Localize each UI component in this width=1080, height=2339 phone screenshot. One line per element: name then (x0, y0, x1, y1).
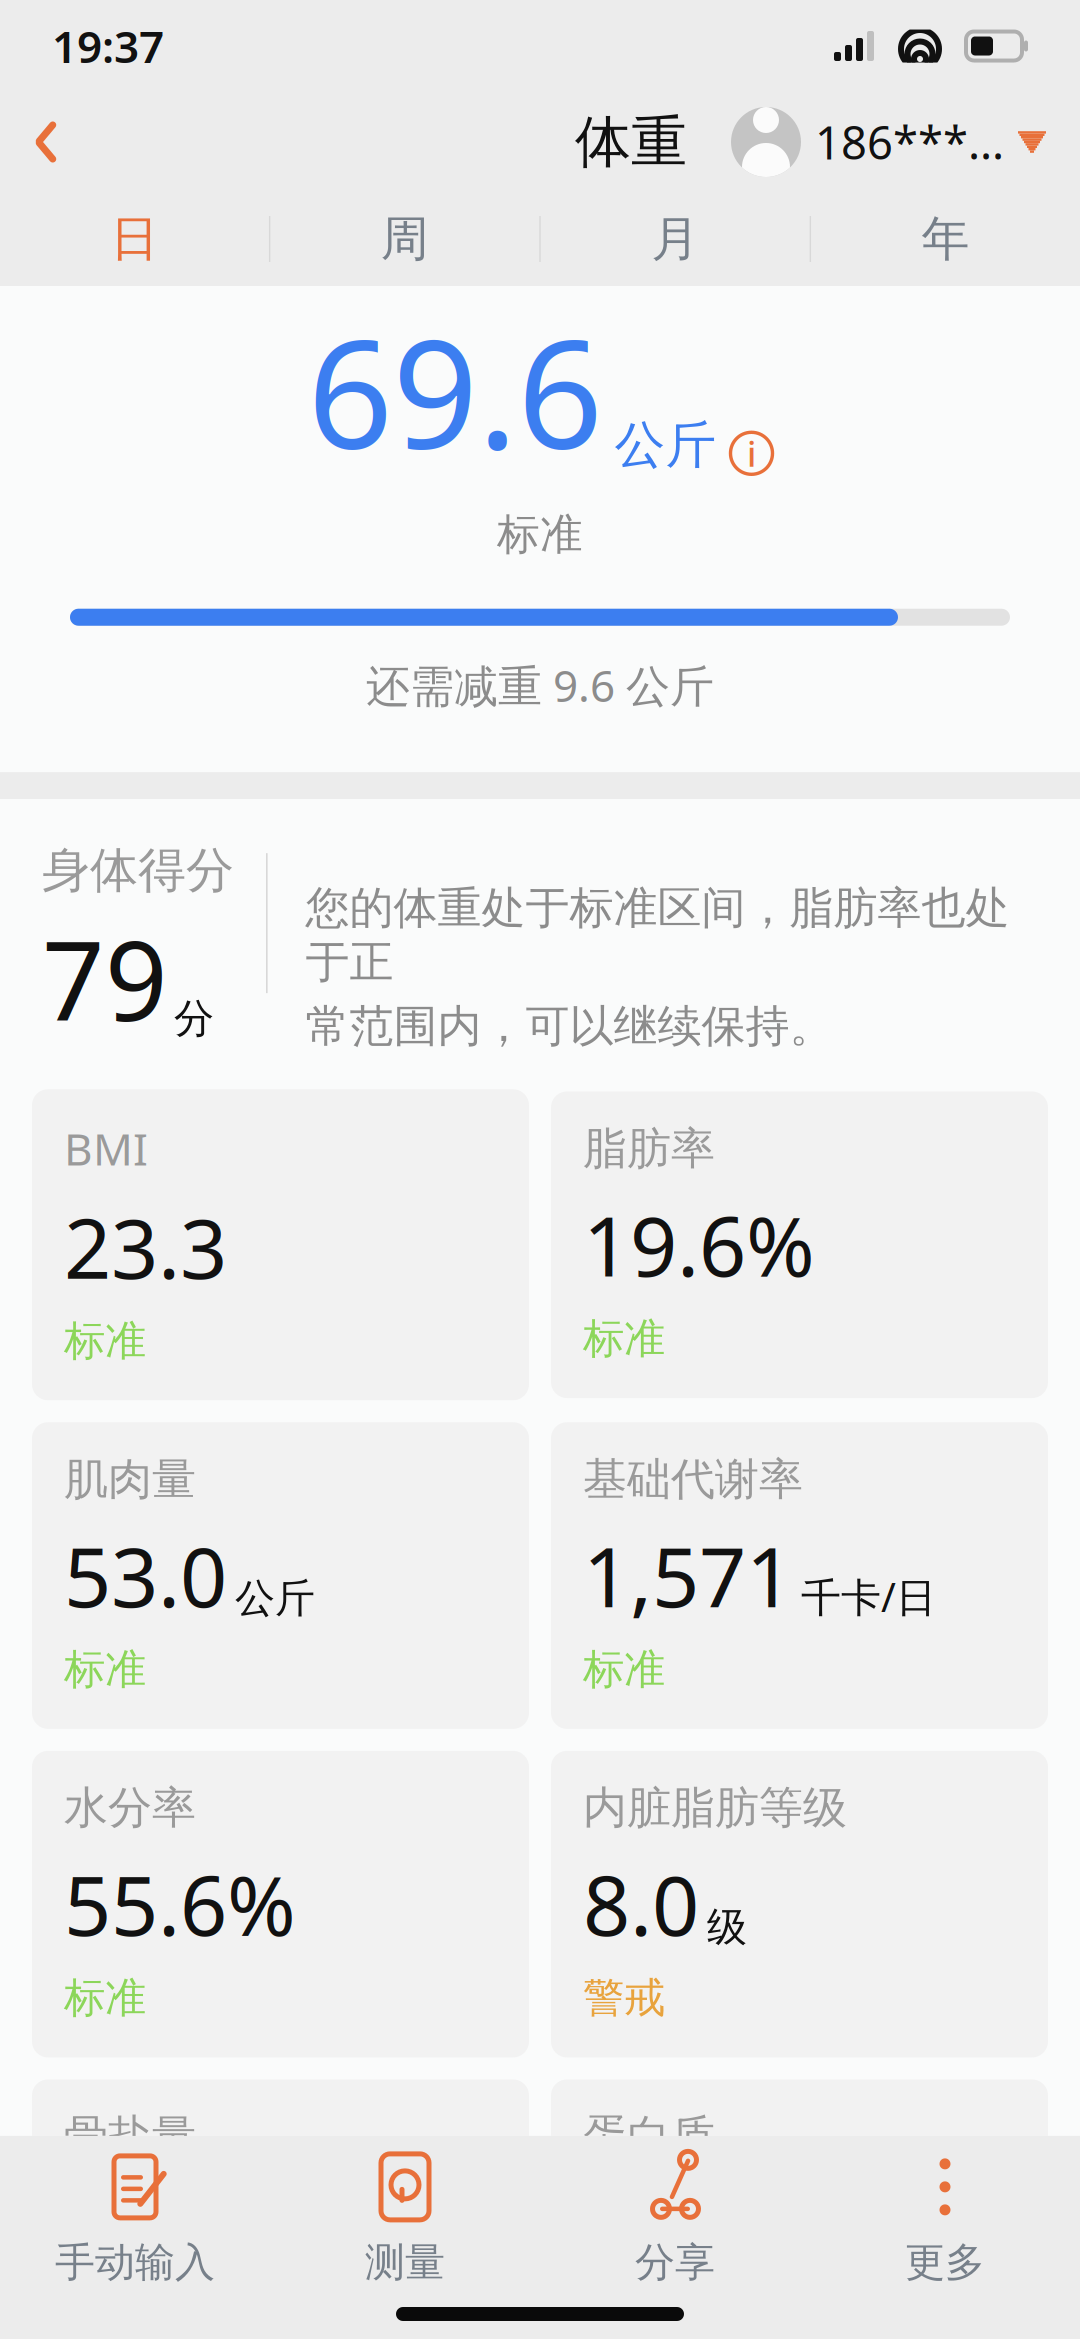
button[interactable]: 月 (541, 185, 810, 292)
staticText: 常范围内，可以继续保持。 (306, 999, 834, 1053)
staticText: 脂肪率 (583, 1121, 715, 1175)
button[interactable]: 蛋白质 (551, 2079, 1048, 2339)
button[interactable]: 测量 (270, 2136, 540, 2299)
staticText: 水分率 (64, 1781, 196, 1835)
staticText: 月 (651, 209, 699, 268)
button[interactable]: 基础代谢率 (551, 1422, 1048, 1729)
staticText: 公斤 (188, 2231, 268, 2280)
button[interactable]: 周 (270, 185, 539, 292)
staticText: 周 (381, 209, 429, 268)
button[interactable]: 体重说明 (716, 432, 772, 490)
staticText: 测量 (365, 2238, 445, 2287)
staticText: 体重 (575, 108, 687, 176)
staticText: 8.0 (583, 1849, 699, 1959)
staticText: 蛋白质 (583, 2109, 715, 2163)
staticText: 千卡/日 (801, 1570, 936, 1623)
staticText: 还需减重 9.6 公斤 (366, 656, 714, 714)
staticText: 骨盐量 (64, 2109, 196, 2163)
staticText: 标准 (583, 2301, 665, 2339)
staticText: 53.0 (64, 1520, 227, 1630)
staticText: 级 (707, 1902, 747, 1952)
button[interactable]: 年 (811, 185, 1080, 292)
button[interactable]: 水分率 (32, 1751, 529, 2057)
staticText: 标准 (64, 1973, 146, 2023)
staticText: 标准 (583, 1644, 665, 1695)
button[interactable]: 186***... (731, 97, 1046, 187)
staticText: 186***... (815, 112, 1004, 172)
staticText: 分 (174, 994, 214, 1043)
button[interactable]: 分享 (540, 2136, 810, 2299)
staticText: 身体得分 (42, 841, 234, 900)
staticText: 年 (921, 209, 969, 268)
button[interactable]: 手动输入 (0, 2136, 270, 2299)
staticText: 3.0 (64, 2177, 180, 2287)
staticText: BMI (64, 1119, 148, 1178)
button[interactable]: 更多 (810, 2136, 1080, 2299)
staticText: 标准 (583, 1313, 665, 1364)
staticText: 标准 (497, 508, 583, 561)
button[interactable]: 返回 (0, 102, 92, 182)
staticText: 23.3 (64, 1192, 227, 1301)
button[interactable]: 内脏脂肪等级 (551, 1751, 1048, 2057)
staticText: 肌肉量 (64, 1452, 196, 1506)
staticText: 标准 (64, 1644, 146, 1695)
staticText: 更多 (905, 2238, 985, 2287)
staticText: 55.6% (64, 1849, 296, 1959)
staticText: 分享 (635, 2238, 715, 2287)
staticText: 标准 (64, 1315, 146, 1366)
button[interactable]: 脂肪率 (551, 1091, 1048, 1398)
staticText: 手动输入 (55, 2238, 215, 2287)
staticText: 内脏脂肪等级 (583, 1781, 847, 1835)
staticText: i (747, 430, 756, 476)
staticText: 基础代谢率 (583, 1452, 803, 1506)
staticText: 公斤 (235, 1574, 315, 1623)
staticText: 20.5% (583, 2177, 815, 2287)
staticText: 公斤 (614, 414, 716, 476)
button[interactable]: 骨盐量 (32, 2079, 529, 2339)
staticText: 您的体重处于标准区间，脂肪率也处于正 (306, 881, 1010, 989)
staticText: 79 (42, 906, 168, 1051)
staticText: 1,571 (583, 1520, 793, 1630)
button[interactable]: BMI (32, 1089, 529, 1400)
staticText: 69.6 (307, 292, 602, 490)
staticText: 19.6% (583, 1189, 815, 1299)
button[interactable]: 日 (0, 185, 269, 292)
button[interactable]: 肌肉量 (32, 1422, 529, 1729)
staticText: 日 (110, 209, 158, 268)
staticText: 警戒 (583, 1973, 665, 2023)
staticText: 19:37 (52, 17, 164, 75)
